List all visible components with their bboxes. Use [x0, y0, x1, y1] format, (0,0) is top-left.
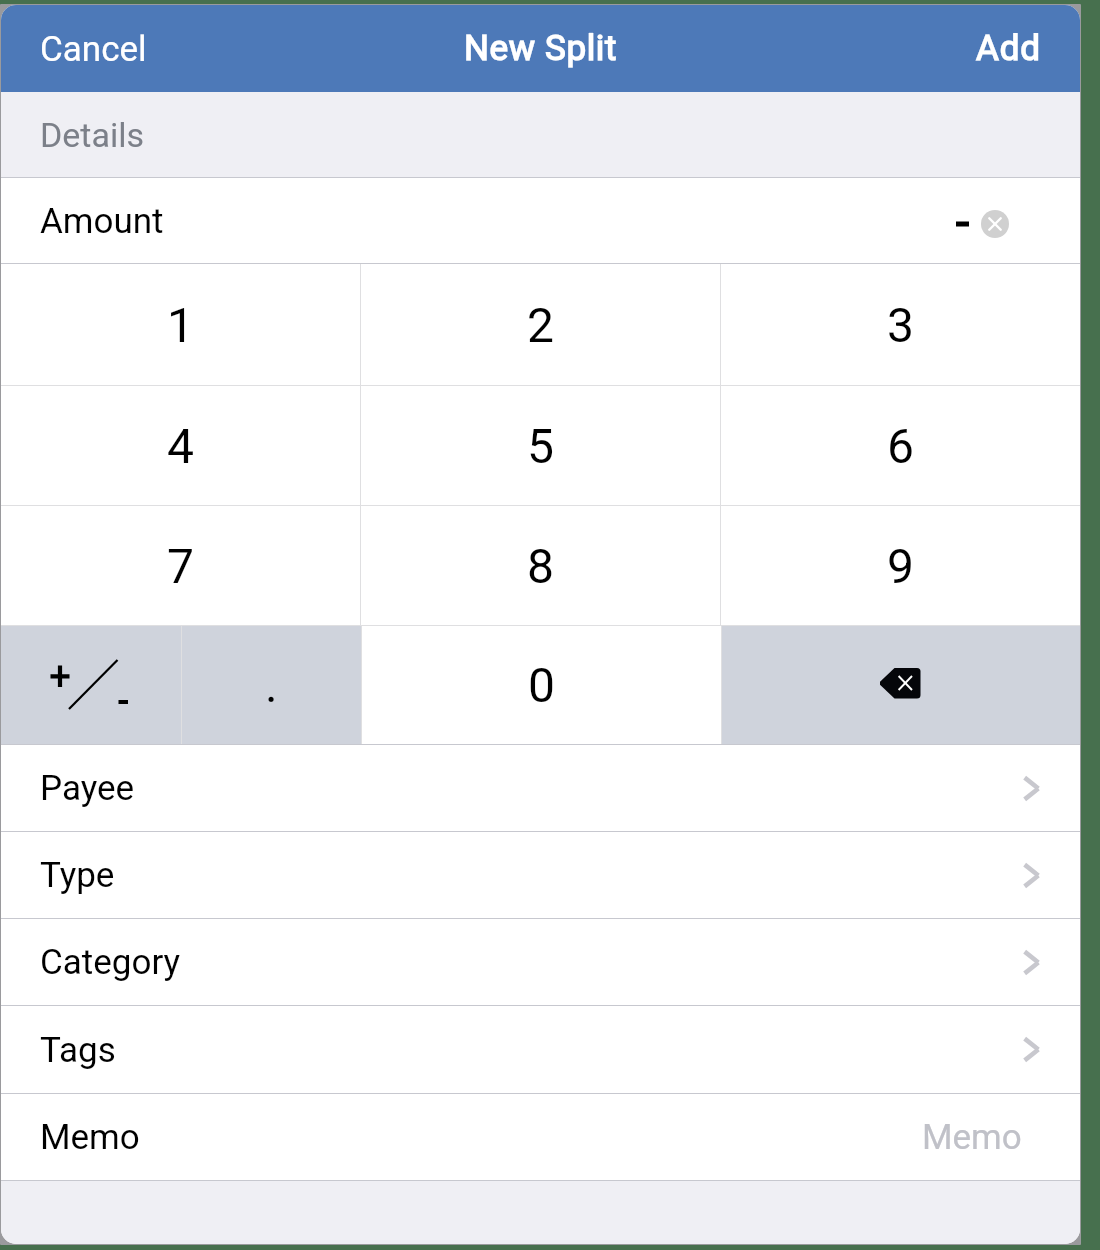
button[interactable]: . — [182, 626, 361, 744]
button[interactable]: Memo — [1, 1094, 1080, 1180]
staticText: 3 — [887, 297, 914, 353]
staticText: Add — [976, 28, 1041, 69]
staticText: 1 — [167, 297, 194, 353]
button[interactable]: 1 — [1, 264, 360, 385]
button[interactable]: Cancel — [1, 10, 177, 87]
button[interactable]: Add — [946, 10, 1080, 87]
button[interactable]: Backspace — [722, 626, 1080, 744]
staticText: Payee — [40, 768, 135, 809]
staticText: 2 — [527, 297, 554, 353]
staticText: 8 — [527, 538, 554, 594]
button[interactable]: Category — [1, 919, 1080, 1005]
staticText: Tags — [40, 1030, 116, 1071]
staticText: Amount — [40, 201, 164, 242]
button[interactable]: Clear amount — [981, 210, 1009, 238]
staticText: Memo — [40, 1117, 140, 1158]
staticText: New Split — [464, 28, 617, 69]
button[interactable]: 8 — [361, 506, 720, 625]
staticText: Category — [40, 942, 181, 983]
staticText: 6 — [887, 418, 914, 474]
button[interactable]: 2 — [361, 264, 720, 385]
staticText: 4 — [167, 418, 194, 474]
button[interactable]: 3 — [721, 264, 1080, 385]
staticText: Memo — [922, 1117, 1022, 1158]
button[interactable]: 6 — [721, 386, 1080, 505]
staticText: 0 — [528, 657, 555, 713]
button[interactable]: Type — [1, 832, 1080, 918]
button[interactable]: 7 — [1, 506, 360, 625]
button[interactable]: 0 — [362, 626, 721, 744]
button[interactable]: Toggle sign — [1, 626, 181, 744]
staticText: Cancel — [40, 29, 147, 70]
button[interactable]: 5 — [361, 386, 720, 505]
button[interactable]: Payee — [1, 745, 1080, 831]
staticText: . — [265, 657, 278, 713]
staticText: Details — [40, 115, 145, 155]
staticText: 9 — [887, 538, 914, 594]
staticText: Type — [40, 855, 115, 896]
button[interactable]: 4 — [1, 386, 360, 505]
staticText: 5 — [527, 418, 554, 474]
staticText: 7 — [167, 538, 194, 594]
button[interactable]: 9 — [721, 506, 1080, 625]
button[interactable]: Tags — [1, 1006, 1080, 1093]
